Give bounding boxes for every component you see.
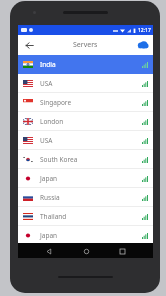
staticText: Japan [40,231,58,240]
button[interactable]: USA [18,131,153,150]
button[interactable]: USA [18,74,153,93]
button[interactable]: Back [43,245,55,257]
button[interactable]: Home [80,245,92,257]
button[interactable]: Recents [116,245,128,257]
staticText: London [40,117,64,126]
staticText: South Korea [40,155,78,164]
button[interactable]: Russia [18,188,153,207]
staticText: Servers [73,40,98,50]
button[interactable]: Japan [18,169,153,188]
button[interactable]: London [18,112,153,131]
staticText: USA [40,79,53,88]
staticText: Japan [40,174,58,183]
button[interactable]: Cloud [135,38,149,52]
button[interactable]: Singapore [18,93,153,112]
staticText: India [40,60,56,69]
staticText: Thailand [40,212,67,221]
button[interactable]: South Korea [18,150,153,169]
button[interactable]: Back [22,38,36,52]
staticText: Singapore [40,98,72,107]
staticText: Russia [40,193,60,202]
staticText: USA [40,136,53,145]
button[interactable]: Japan [18,226,153,245]
button[interactable]: India [18,55,153,74]
button[interactable]: Thailand [18,207,153,226]
staticText: 12:17 [138,27,151,34]
